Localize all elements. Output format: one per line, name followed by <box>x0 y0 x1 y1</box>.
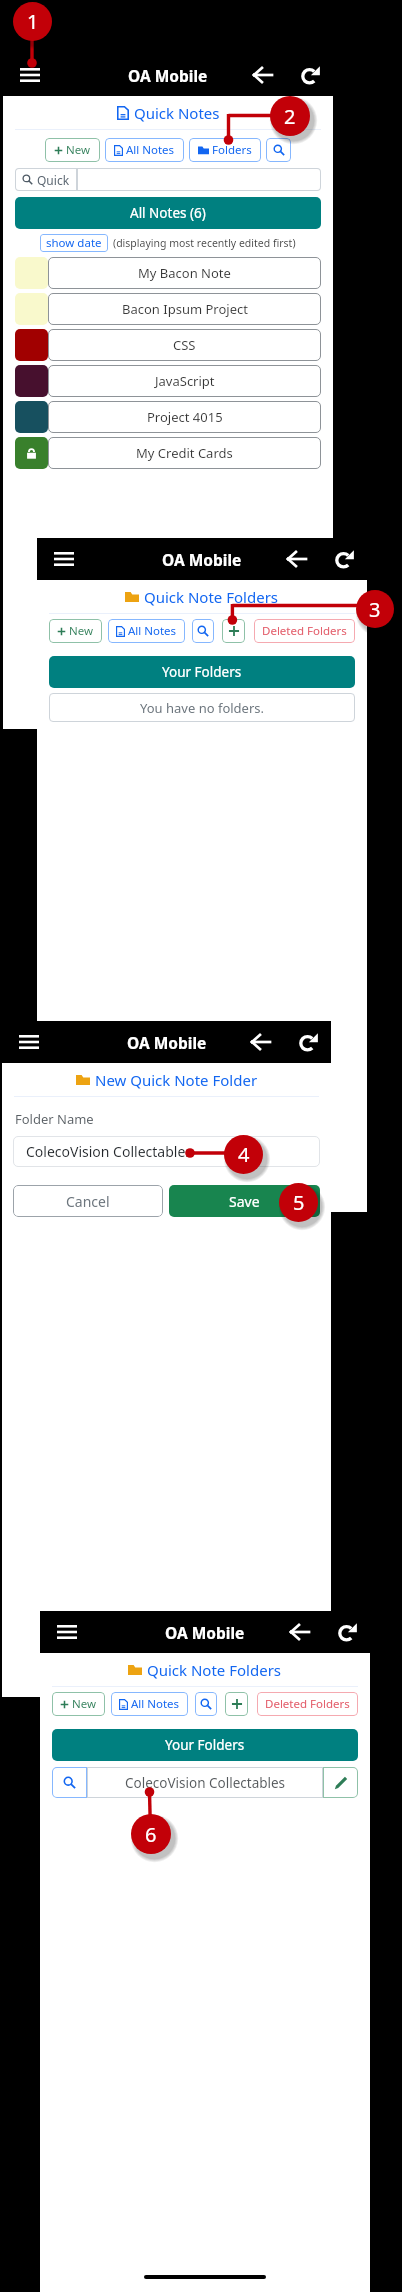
button[interactable]: All Notes <box>111 1692 188 1716</box>
button[interactable]: All Notes <box>108 619 185 643</box>
button[interactable]: Search folder <box>52 1767 87 1798</box>
button[interactable]: Back <box>247 1029 273 1055</box>
staticText: ColecoVision Collectables <box>26 1142 192 1161</box>
button[interactable]: Menu <box>52 1617 82 1647</box>
button[interactable]: Refresh <box>333 1619 359 1645</box>
button[interactable]: Your Folders <box>49 656 355 688</box>
button[interactable]: Edit folder <box>323 1767 358 1798</box>
staticText: Bacon Ipsum Project <box>122 300 248 318</box>
button[interactable]: ColecoVision Collectables <box>87 1767 323 1798</box>
staticText: Deleted Folders <box>265 1696 350 1712</box>
button[interactable]: Back <box>249 62 275 88</box>
button[interactable]: Folders <box>189 138 261 162</box>
staticText: CSS <box>173 336 196 354</box>
staticText: show date <box>46 235 102 251</box>
staticText: OA Mobile <box>128 65 208 86</box>
staticText: Project 4015 <box>147 408 223 426</box>
button[interactable]: Back <box>286 1619 312 1645</box>
button[interactable]: Menu <box>14 1027 44 1057</box>
button[interactable]: Menu <box>49 544 79 574</box>
button[interactable]: Add folder <box>225 1692 248 1716</box>
button[interactable]: New <box>49 619 102 643</box>
button[interactable]: Bacon Ipsum Project <box>15 293 321 325</box>
staticText: Quick Note Folders <box>147 1660 282 1680</box>
button[interactable]: Refresh <box>294 1029 320 1055</box>
staticText: All Notes <box>128 623 177 639</box>
button[interactable]: All Notes <box>105 138 184 162</box>
button[interactable]: Deleted Folders <box>254 619 355 643</box>
button[interactable]: JavaScript <box>15 365 321 397</box>
staticText: New <box>66 142 91 158</box>
button[interactable]: New <box>45 138 100 162</box>
staticText: Quick Note Folders <box>144 587 279 607</box>
staticText: OA Mobile <box>127 1032 207 1053</box>
staticText: You have no folders. <box>140 699 265 717</box>
staticText: Folders <box>212 142 252 158</box>
staticText: Your Folders <box>165 1736 245 1754</box>
button[interactable]: My Bacon Note <box>15 257 321 289</box>
button[interactable]: New <box>52 1692 105 1716</box>
staticText: 5 <box>293 1189 305 1216</box>
button[interactable]: Menu <box>15 60 45 90</box>
staticText: Cancel <box>66 1192 110 1211</box>
staticText: New <box>72 1696 97 1712</box>
staticText: OA Mobile <box>165 1622 245 1643</box>
button[interactable]: Cancel <box>13 1185 163 1217</box>
staticText: 1 <box>27 8 39 35</box>
button[interactable]: Add folder <box>222 619 245 643</box>
staticText: (displaying most recently edited first) <box>113 236 296 250</box>
button[interactable]: Refresh <box>296 62 322 88</box>
button[interactable]: Refresh <box>330 546 356 572</box>
button[interactable]: Your Folders <box>52 1729 358 1761</box>
staticText: JavaScript <box>155 372 215 390</box>
button[interactable]: ColecoVision Collectables <box>13 1136 320 1167</box>
staticText: My Bacon Note <box>138 264 231 282</box>
staticText: New <box>69 623 94 639</box>
button[interactable]: CSS <box>15 329 321 361</box>
button[interactable]: show date <box>40 234 108 252</box>
staticText: All Notes (6) <box>130 204 206 222</box>
button[interactable]: Search <box>266 138 291 162</box>
staticText: My Credit Cards <box>136 444 233 462</box>
button[interactable]: Search <box>195 1692 217 1716</box>
button[interactable]: Back <box>283 546 309 572</box>
staticText: OA Mobile <box>162 549 242 570</box>
button[interactable]: Search <box>192 619 214 643</box>
staticText: 3 <box>369 596 381 623</box>
button[interactable]: All Notes (6) <box>15 197 321 229</box>
staticText: 6 <box>145 1821 157 1848</box>
staticText: All Notes <box>131 1696 180 1712</box>
staticText: New Quick Note Folder <box>95 1070 258 1090</box>
button[interactable]: Project 4015 <box>15 401 321 433</box>
staticText: 4 <box>238 1141 250 1168</box>
button[interactable]: Save <box>169 1185 320 1217</box>
staticText: Your Folders <box>162 663 242 681</box>
staticText: Folder Name <box>15 1110 94 1128</box>
staticText: ColecoVision Collectables <box>125 1774 286 1792</box>
button[interactable]: Deleted Folders <box>257 1692 358 1716</box>
staticText: Quick <box>37 172 70 188</box>
staticText: 2 <box>284 103 296 130</box>
staticText: Save <box>229 1192 260 1211</box>
staticText: Deleted Folders <box>262 623 347 639</box>
staticText: All Notes <box>126 142 175 158</box>
staticText: Quick Notes <box>134 103 220 123</box>
button[interactable]: My Credit Cards <box>15 437 321 469</box>
